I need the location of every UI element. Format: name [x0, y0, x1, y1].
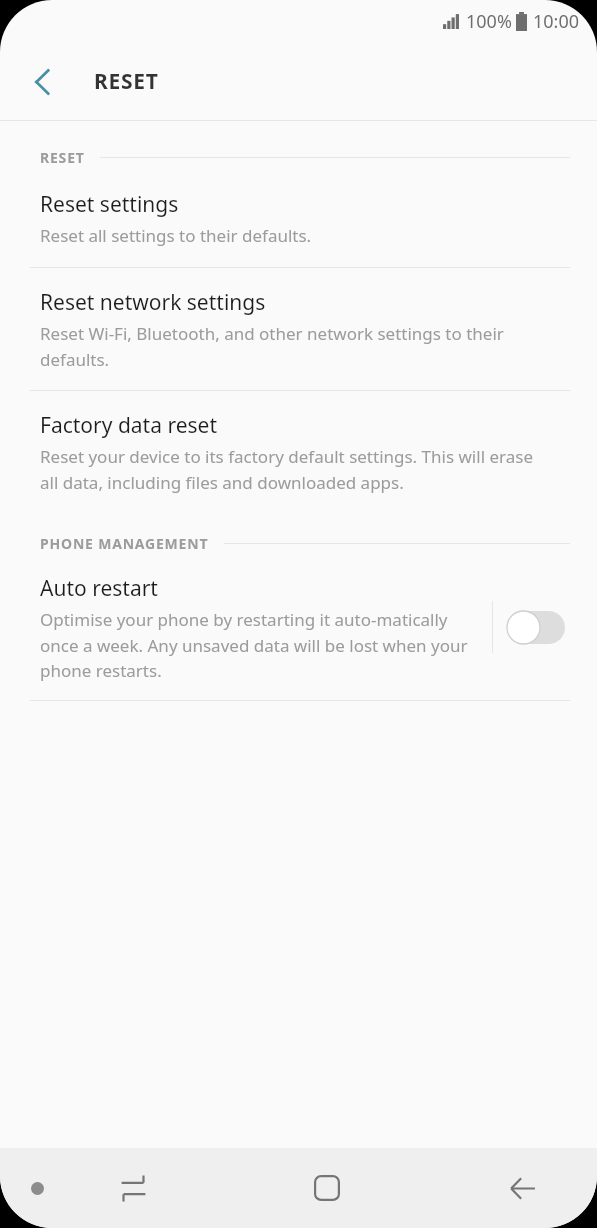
staticText: Reset Wi-Fi, Bluetooth, and other networ… — [40, 322, 537, 371]
button[interactable]: Auto restart — [0, 553, 597, 700]
staticText: Optimise your phone by restarting it aut… — [40, 608, 478, 682]
button[interactable]: Back — [17, 57, 67, 107]
staticText: RESET — [40, 148, 85, 167]
button[interactable]: Recents — [72, 1148, 194, 1228]
staticText: Reset all settings to their defaults. — [40, 224, 312, 247]
button[interactable]: Factory data reset — [0, 391, 597, 508]
staticText: Reset network settings — [40, 288, 266, 317]
staticText: RESET — [94, 67, 159, 96]
staticText: Factory data reset — [40, 411, 217, 440]
staticText: Auto restart — [40, 574, 158, 603]
staticText: Reset your device to its factory default… — [40, 445, 537, 494]
staticText: 10:00 — [533, 9, 580, 34]
staticText: Reset settings — [40, 190, 179, 219]
staticText: 100% — [466, 9, 512, 34]
button[interactable]: Auto restart toggle — [507, 603, 565, 651]
button[interactable]: Home — [266, 1148, 388, 1228]
button[interactable]: Back — [461, 1148, 583, 1228]
button[interactable]: Reset settings — [0, 167, 597, 268]
staticText: PHONE MANAGEMENT — [40, 534, 209, 553]
button[interactable]: Reset network settings — [0, 268, 597, 391]
